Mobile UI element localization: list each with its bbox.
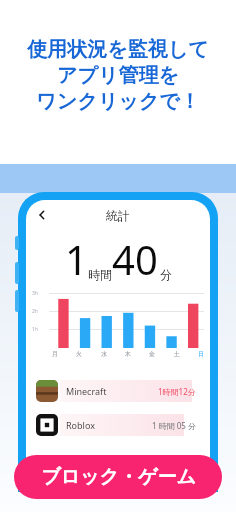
staticText: 3h bbox=[32, 290, 38, 297]
staticText: 分 bbox=[160, 267, 172, 282]
staticText: 金 bbox=[149, 350, 155, 358]
staticText: 水 bbox=[101, 350, 107, 358]
staticText: 火 bbox=[76, 350, 82, 358]
staticText: 月 bbox=[52, 350, 58, 358]
staticText: 1 時間 05 分 bbox=[152, 420, 196, 431]
staticText: 1 bbox=[65, 232, 88, 286]
button[interactable]: Roblox bbox=[34, 412, 204, 438]
button[interactable]: Back bbox=[30, 203, 54, 227]
staticText: 40 bbox=[112, 232, 158, 286]
staticText: Roblox bbox=[66, 419, 95, 431]
staticText: ワンクリックで！ bbox=[36, 89, 200, 114]
staticText: 統計 bbox=[106, 208, 130, 223]
staticText: ブロック・ゲーム bbox=[41, 465, 196, 489]
staticText: 1h bbox=[32, 326, 38, 333]
button[interactable]: Minecraft bbox=[34, 378, 204, 404]
staticText: 使用状況を監視して bbox=[27, 37, 209, 62]
staticText: 2h bbox=[32, 308, 38, 315]
staticText: Minecraft bbox=[66, 385, 107, 397]
staticText: 土 bbox=[174, 350, 180, 358]
staticText: 1時間12分 bbox=[158, 386, 196, 397]
staticText: アプリ管理を bbox=[57, 63, 179, 88]
staticText: 木 bbox=[125, 350, 131, 358]
staticText: 日 bbox=[198, 350, 204, 358]
staticText: 時間 bbox=[88, 267, 112, 282]
button[interactable]: ブロック・ゲーム bbox=[14, 455, 222, 499]
